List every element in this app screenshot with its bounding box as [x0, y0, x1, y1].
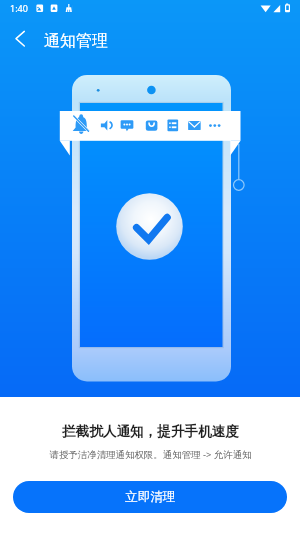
staticText: 请授予洁净清理通知权限。通知管理 -> 允许通知	[49, 448, 252, 461]
button[interactable]: Back	[2, 20, 38, 56]
button[interactable]: 立即清理	[13, 481, 287, 513]
staticText: 通知管理	[44, 31, 108, 51]
staticText: 立即清理	[125, 489, 176, 505]
staticText: 拦截扰人通知，提升手机速度	[62, 423, 239, 440]
staticText: 1:40	[10, 2, 28, 14]
